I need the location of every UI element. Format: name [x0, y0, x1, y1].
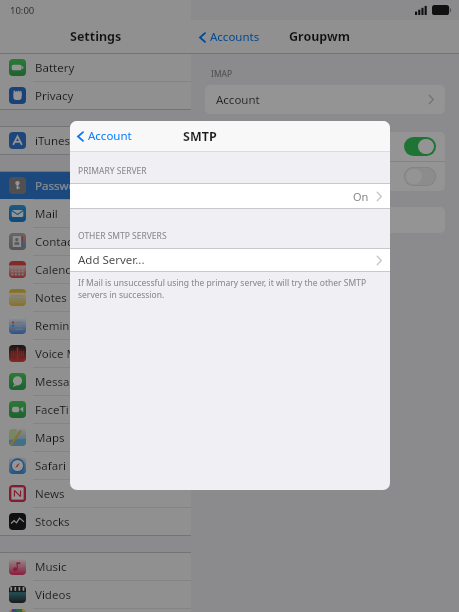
staticText: Calend: [35, 262, 73, 278]
staticText: Stocks: [35, 514, 70, 530]
button[interactable]: Remind: [0, 312, 191, 339]
staticText: Messag: [35, 374, 77, 390]
button[interactable]: Enabled: [205, 132, 445, 161]
button[interactable]: Enabled: [404, 137, 436, 156]
staticText: Account: [216, 92, 260, 108]
button[interactable]: Mail: [0, 200, 191, 227]
button[interactable]: Photos: [0, 609, 191, 612]
staticText: Notes: [35, 290, 67, 306]
staticText: Account: [88, 128, 132, 144]
staticText: Safari: [35, 458, 66, 474]
staticText: If Mail is unsuccessful using the primar…: [78, 277, 382, 300]
staticText: Passwo: [35, 178, 76, 194]
button[interactable]: Messag: [0, 368, 191, 395]
staticText: PRIMARY SERVER: [78, 165, 147, 177]
staticText: Battery: [35, 60, 75, 76]
staticText: OTHER SMTP SERVERS: [78, 230, 167, 242]
button[interactable]: Notes: [0, 284, 191, 311]
staticText: FaceTi: [35, 402, 69, 418]
staticText: Voice M: [35, 346, 78, 362]
button[interactable]: Disabled: [205, 162, 445, 191]
button[interactable]: Stocks: [0, 508, 191, 535]
staticText: Videos: [35, 587, 71, 603]
staticText: Accounts: [210, 29, 260, 45]
button[interactable]: iTunes: [0, 127, 191, 154]
button[interactable]: Safari: [0, 452, 191, 479]
button[interactable]: [205, 207, 445, 233]
staticText: IMAP: [211, 68, 233, 80]
button[interactable]: News: [0, 480, 191, 507]
button[interactable]: Account: [205, 85, 445, 114]
button[interactable]: FaceTi: [0, 396, 191, 423]
button[interactable]: Privacy: [0, 82, 191, 109]
staticText: Remind: [35, 318, 77, 334]
button[interactable]: Accounts: [198, 29, 260, 45]
button[interactable]: Add Server...: [70, 249, 390, 271]
button[interactable]: Calend: [0, 256, 191, 283]
button[interactable]: Contac: [0, 228, 191, 255]
staticText: Maps: [35, 430, 65, 446]
button[interactable]: Passwo: [0, 172, 191, 199]
staticText: Groupwm: [289, 28, 350, 45]
button[interactable]: Disabled: [404, 167, 436, 186]
staticText: Music: [35, 559, 67, 575]
staticText: On: [353, 189, 369, 204]
button[interactable]: Music: [0, 553, 191, 580]
button[interactable]: Battery: [0, 54, 191, 81]
button[interactable]: Videos: [0, 581, 191, 608]
staticText: 10:00: [10, 4, 35, 17]
staticText: Mail: [35, 206, 58, 222]
button[interactable]: Account: [76, 128, 132, 144]
staticText: iTunes: [35, 133, 70, 149]
button[interactable]: Maps: [0, 424, 191, 451]
staticText: Add Server...: [78, 252, 145, 268]
staticText: Contac: [35, 234, 73, 250]
button[interactable]: On: [70, 184, 390, 208]
staticText: Settings: [70, 28, 122, 45]
staticText: SMTP: [183, 128, 217, 145]
button[interactable]: Voice M: [0, 340, 191, 367]
staticText: Privacy: [35, 88, 74, 104]
staticText: News: [35, 486, 65, 502]
